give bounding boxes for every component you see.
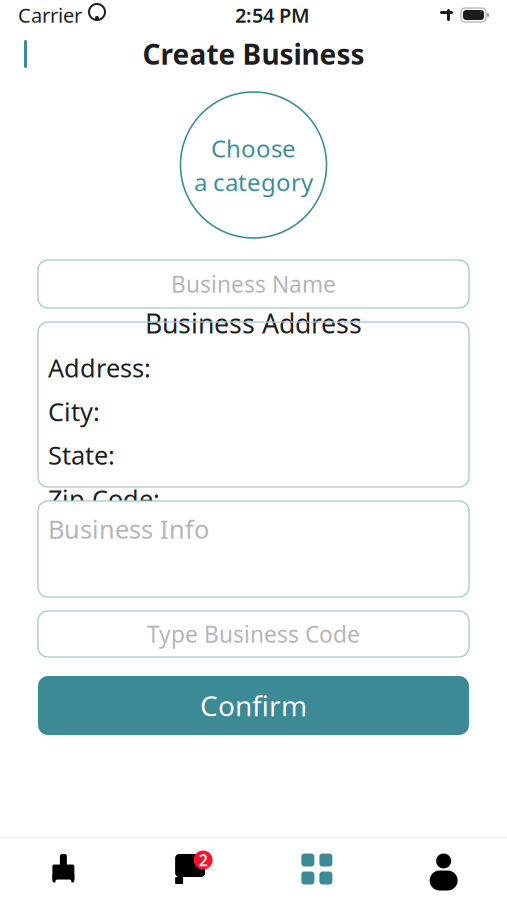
staticText: City: [48, 395, 100, 428]
staticText: Type Business Code [147, 619, 360, 649]
button[interactable]: Business Name [38, 260, 469, 308]
staticText: Carrier [18, 2, 82, 28]
staticText: Business Info [48, 512, 209, 546]
staticText: Choose [211, 132, 296, 164]
staticText: Address: [48, 351, 151, 384]
button[interactable]: Choose a category [180, 92, 326, 238]
button[interactable]: Business Address [38, 322, 469, 487]
button[interactable]: Back [6, 32, 50, 76]
staticText: Zip Code: [48, 482, 160, 515]
staticText: 2 [199, 849, 208, 871]
button[interactable]: Businesses [253, 838, 380, 900]
button[interactable]: Navigate [0, 838, 127, 900]
button[interactable]: Business Info [38, 501, 469, 597]
button[interactable]: Profile [380, 838, 507, 900]
button[interactable]: Confirm [38, 676, 469, 735]
button[interactable]: Messages, 2 unread [127, 838, 254, 900]
staticText: Create Business [142, 35, 364, 73]
staticText: 2:54 PM [235, 2, 310, 28]
staticText: Business Name [171, 269, 336, 299]
button[interactable]: Type Business Code [38, 611, 469, 657]
staticText: Confirm [200, 687, 307, 724]
staticText: State: [48, 438, 115, 472]
staticText: a category [194, 166, 313, 198]
staticText: Business Address [145, 305, 362, 341]
